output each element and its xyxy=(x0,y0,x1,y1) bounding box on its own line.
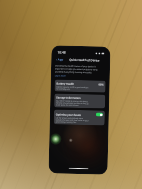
staticText: Remove unused apps and files to free up xyxy=(56,101,89,104)
staticText: important. It helps you detect problems … xyxy=(55,67,98,71)
staticText: Battery capacity is still in good condit… xyxy=(56,85,88,88)
staticText: 64.2 GB of 128 GB is used on this device… xyxy=(56,99,88,102)
button[interactable]: Battery Health xyxy=(54,79,106,93)
staticText: background apps and clear cache so your xyxy=(56,118,89,121)
staticText: phone keeps running fast. xyxy=(56,120,77,123)
staticText: Checking the health status of your devic… xyxy=(55,64,96,68)
button[interactable]: Back to App xyxy=(56,57,63,62)
button[interactable]: Storage Information xyxy=(54,93,105,109)
staticText: ‹ App xyxy=(56,57,63,62)
staticText: and keep everything running smoothly. xyxy=(55,70,92,74)
button[interactable]: Optimise your device xyxy=(54,109,105,126)
staticText: Let the system automatically close xyxy=(56,116,84,119)
staticText: Storage Information xyxy=(56,95,81,99)
staticText: Quick Health of Device xyxy=(69,58,100,62)
staticText: Optimise your device xyxy=(56,112,82,116)
staticText: more space for new content. xyxy=(56,103,79,106)
staticText: 10:48 xyxy=(57,50,66,55)
button[interactable]: Optimise toggle xyxy=(96,112,103,117)
staticText: 98% xyxy=(99,82,104,86)
staticText: for everyday use. xyxy=(56,87,70,90)
button[interactable]: Learn more xyxy=(55,74,66,78)
staticText: Battery Health xyxy=(57,81,75,85)
